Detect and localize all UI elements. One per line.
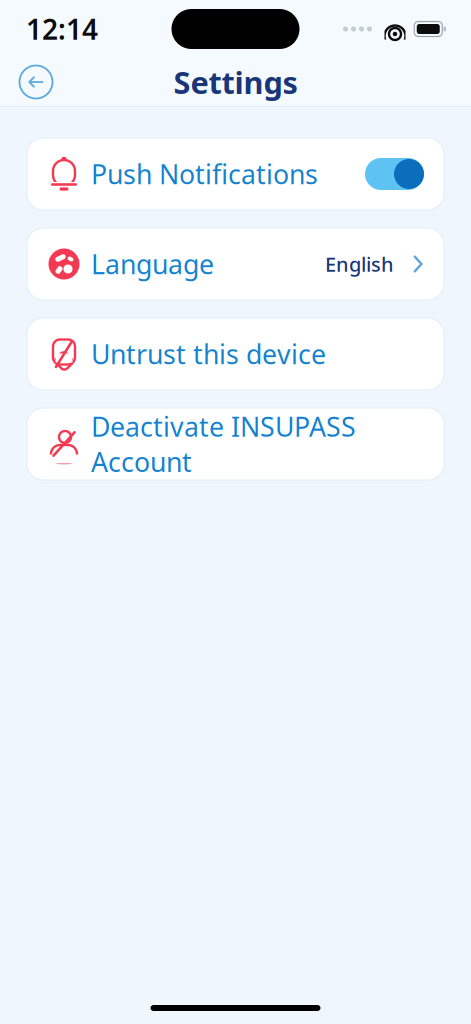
- staticText: Settings: [173, 62, 297, 102]
- staticText: Language: [91, 246, 214, 282]
- button[interactable]: Back: [13, 59, 59, 105]
- staticText: English: [325, 251, 394, 277]
- button[interactable]: Untrust this device: [27, 318, 444, 390]
- staticText: Untrust this device: [91, 336, 326, 372]
- button[interactable]: Language: [27, 228, 444, 300]
- button[interactable]: Deactivate INSUPASS Account: [27, 408, 444, 480]
- staticText: Deactivate INSUPASS Account: [91, 409, 356, 479]
- button[interactable]: Push Notifications: [27, 138, 444, 210]
- staticText: Push Notifications: [91, 156, 318, 192]
- staticText: 12:14: [26, 10, 98, 48]
